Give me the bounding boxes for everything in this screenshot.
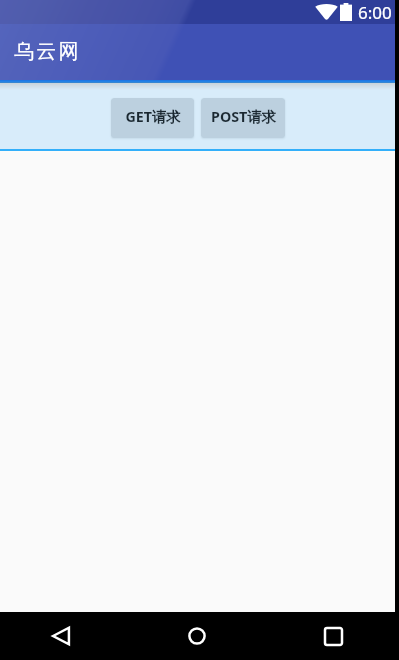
staticText: 6:00 — [358, 1, 392, 24]
button[interactable]: Recent apps — [309, 612, 357, 660]
button[interactable]: Back — [37, 612, 85, 660]
button[interactable]: Home — [173, 612, 221, 660]
staticText: POST请求 — [211, 107, 276, 127]
staticText: GET请求 — [125, 107, 181, 127]
staticText: 乌云网 — [14, 39, 81, 64]
button[interactable]: POST请求 — [201, 98, 285, 138]
button[interactable]: GET请求 — [111, 98, 194, 138]
